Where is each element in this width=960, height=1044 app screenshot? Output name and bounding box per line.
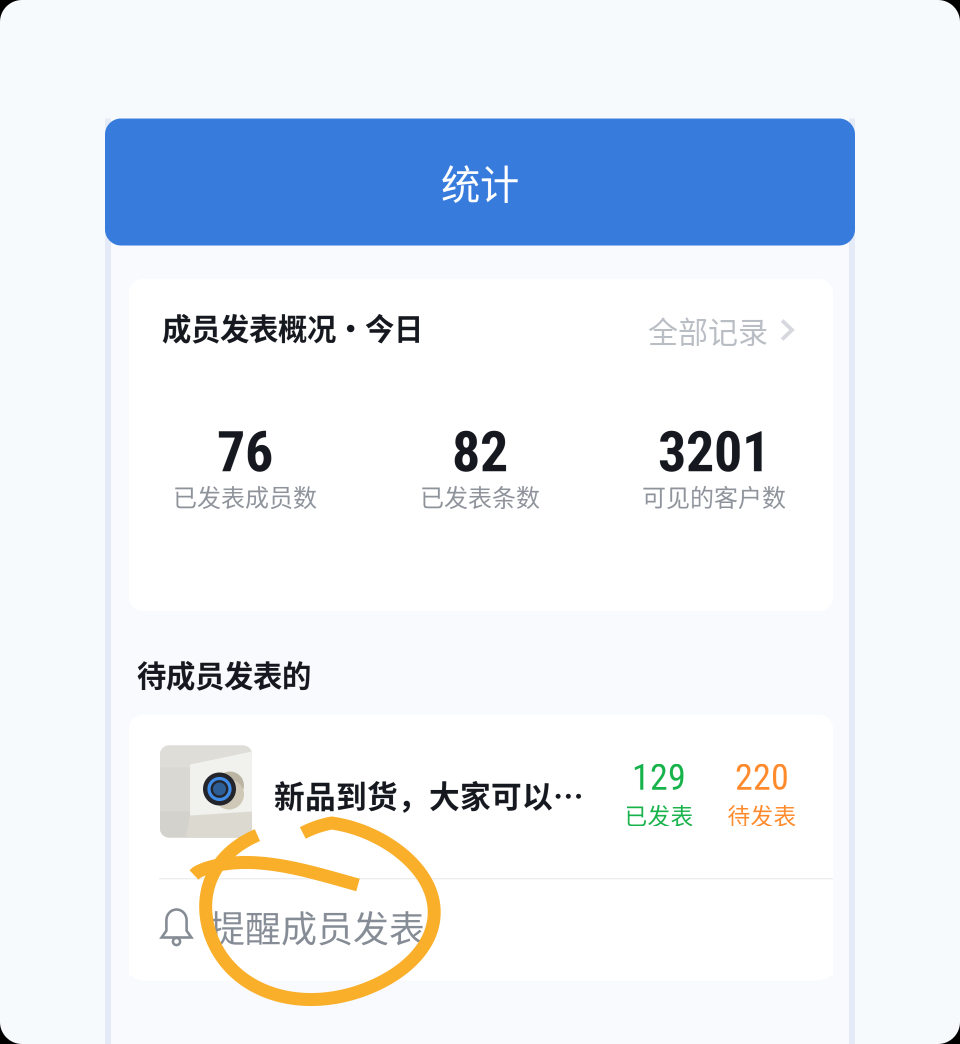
button[interactable]: 提醒成员发表 [129, 879, 833, 975]
staticText: 3201 [658, 419, 770, 485]
staticText: 提醒成员发表 [209, 900, 425, 952]
staticText: 129 [632, 756, 686, 799]
staticText: 220 [735, 756, 789, 799]
staticText: 待发表 [727, 798, 796, 831]
button[interactable]: 全部记录 [514, 308, 833, 352]
staticText: 已发表成员数 [173, 479, 317, 513]
staticText: 新品到货，大家可以… [274, 772, 584, 817]
staticText: 已发表条数 [420, 479, 540, 513]
staticText: 待成员发表的 [137, 653, 311, 695]
staticText: 全部记录 [648, 308, 768, 352]
staticText: 已发表 [624, 798, 693, 831]
staticText: 76 [217, 419, 273, 485]
staticText: 成员发表概况·今日 [162, 306, 423, 348]
staticText: 统计 [441, 153, 519, 210]
staticText: 82 [452, 419, 508, 485]
staticText: 可见的客户数 [642, 479, 786, 513]
